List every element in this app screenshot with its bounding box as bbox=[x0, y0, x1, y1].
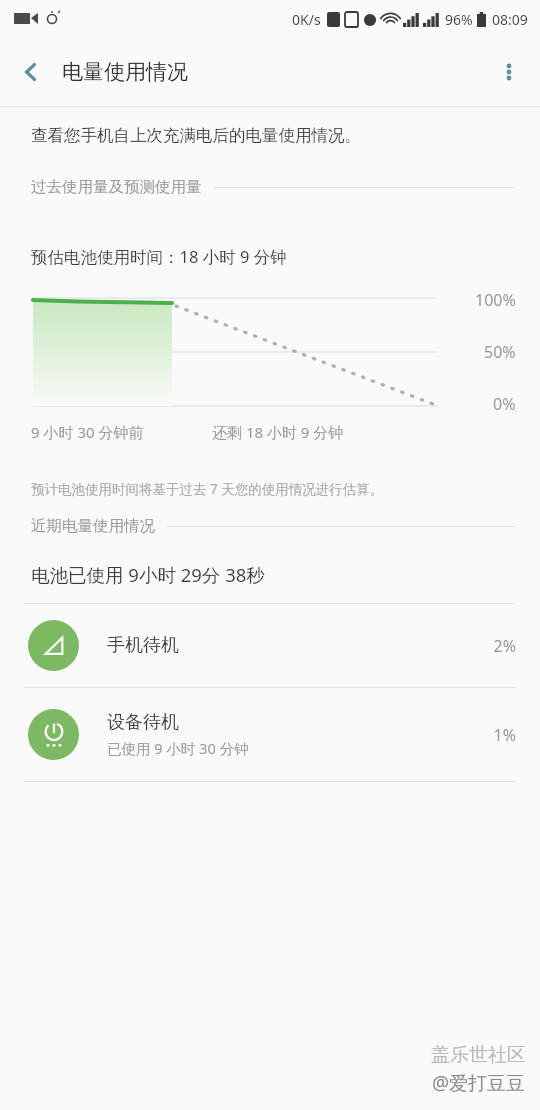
staticText: 1% bbox=[493, 724, 516, 746]
button[interactable]: Back bbox=[0, 38, 62, 106]
button[interactable]: More options bbox=[478, 38, 540, 106]
staticText: 96% bbox=[445, 10, 473, 29]
staticText: 过去使用量及预测使用量 bbox=[31, 177, 202, 197]
staticText: 2% bbox=[493, 635, 516, 657]
button[interactable]: 手机待机 bbox=[0, 604, 540, 687]
staticText: 0% bbox=[493, 393, 516, 414]
staticText: 近期电量使用情况 bbox=[31, 516, 155, 536]
staticText: 已使用 9 小时 30 分钟 bbox=[107, 738, 249, 758]
staticText: 预计电池使用时间将基于过去 7 天您的使用情况进行估算。 bbox=[31, 480, 384, 498]
staticText: 9 小时 30 分钟前 bbox=[31, 422, 144, 442]
button[interactable]: 设备待机 bbox=[0, 688, 540, 781]
staticText: 50% bbox=[484, 341, 516, 363]
staticText: 电量使用情况 bbox=[62, 59, 188, 85]
staticText: 还剩 18 小时 9 分钟 bbox=[212, 422, 344, 442]
staticText: 设备待机 bbox=[107, 711, 179, 734]
staticText: 盖乐世社区 bbox=[431, 1043, 526, 1067]
staticText: 查看您手机自上次充满电后的电量使用情况。 bbox=[31, 125, 361, 146]
staticText: @爱打豆豆 bbox=[432, 1070, 526, 1096]
staticText: 08:09 bbox=[492, 10, 528, 29]
staticText: 手机待机 bbox=[107, 634, 179, 657]
staticText: 0K/s bbox=[292, 10, 321, 29]
staticText: 预估电池使用时间：18 小时 9 分钟 bbox=[31, 245, 287, 268]
staticText: 100% bbox=[475, 289, 516, 311]
staticText: 电池已使用 9小时 29分 38秒 bbox=[31, 562, 265, 587]
